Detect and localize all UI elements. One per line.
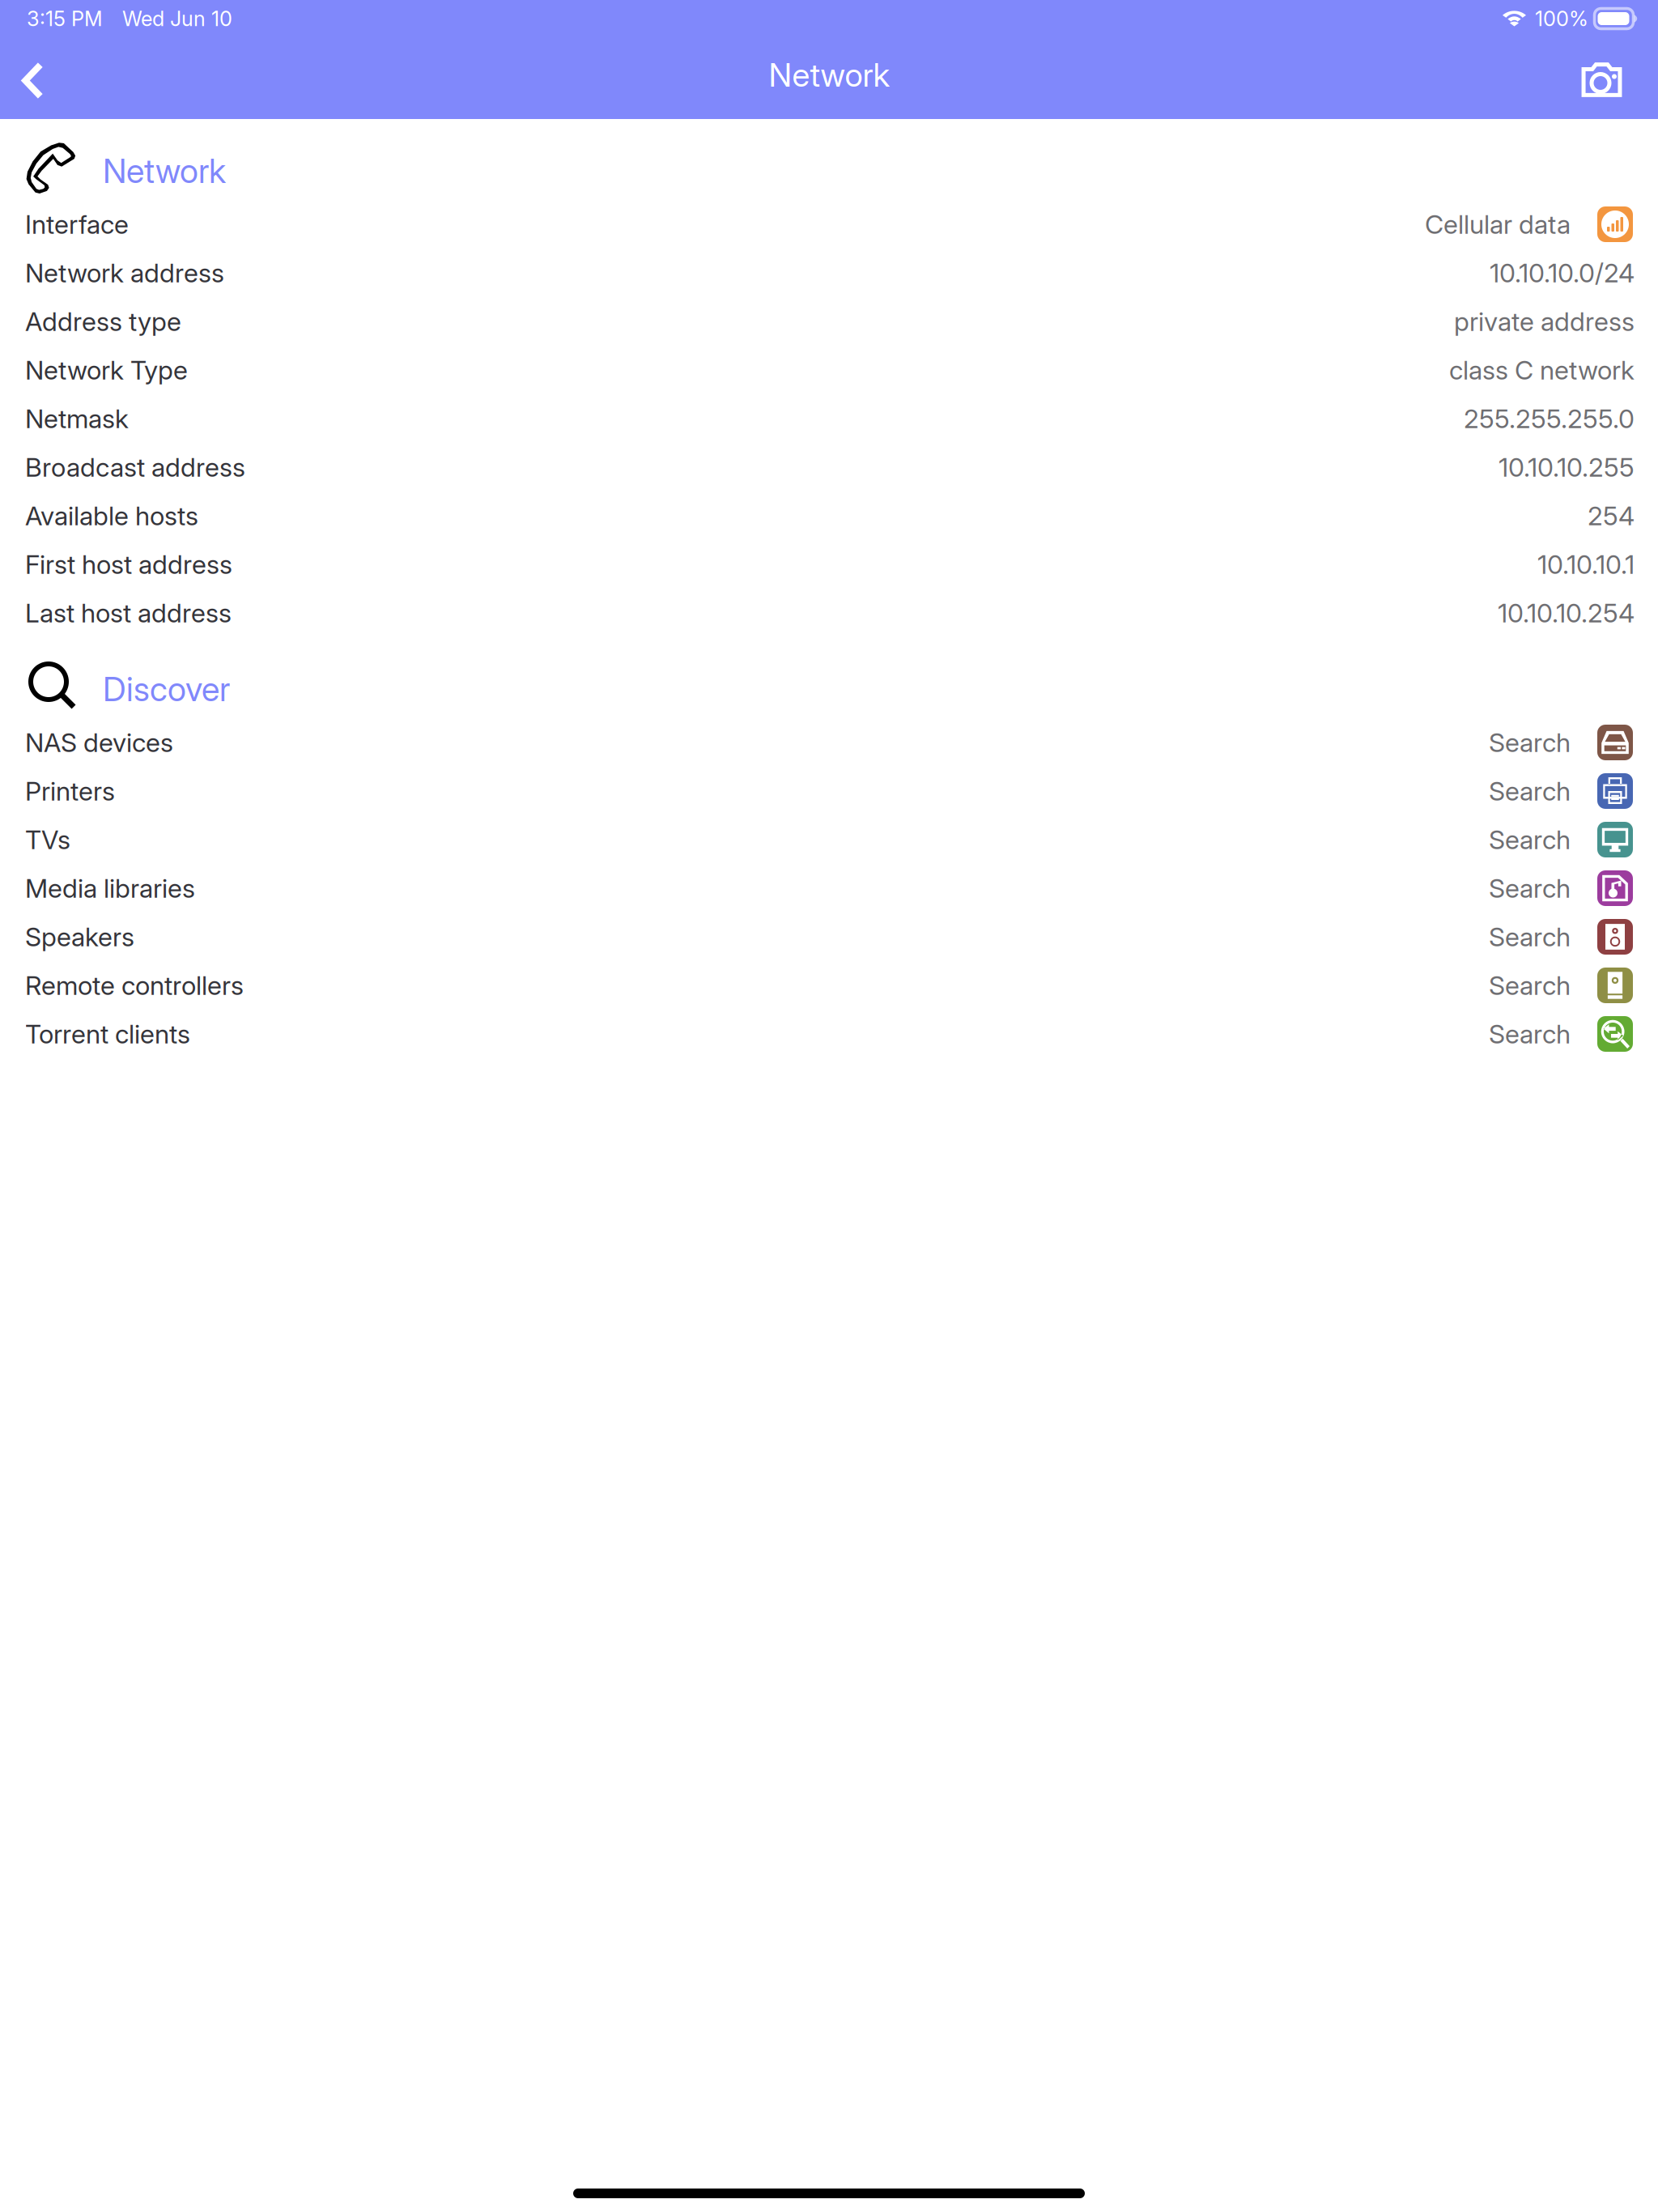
button[interactable]: Remote controllers bbox=[25, 961, 1635, 1010]
staticText: Interface bbox=[25, 209, 129, 240]
staticText: NAS devices bbox=[25, 727, 173, 758]
button[interactable]: Printers bbox=[25, 767, 1635, 815]
staticText: Media libraries bbox=[25, 872, 195, 904]
button[interactable]: Torrent clients bbox=[25, 1010, 1635, 1058]
button[interactable]: Back bbox=[0, 38, 77, 118]
staticText: Search bbox=[1489, 824, 1571, 855]
staticText: 10.10.10.0/24 bbox=[1490, 257, 1635, 288]
staticText: 255.255.255.0 bbox=[1464, 403, 1635, 434]
staticText: Search bbox=[1489, 775, 1571, 807]
button[interactable]: Interface bbox=[25, 200, 1635, 249]
staticText: Network address bbox=[25, 257, 224, 288]
staticText: 10.10.10.1 bbox=[1537, 549, 1635, 580]
staticText: TVs bbox=[25, 824, 70, 855]
staticText: Discover bbox=[103, 669, 230, 709]
staticText: Wed Jun 10 bbox=[122, 6, 232, 31]
staticText: 10.10.10.255 bbox=[1499, 451, 1635, 483]
staticText: 100% bbox=[1535, 6, 1588, 31]
staticText: Printers bbox=[25, 775, 115, 807]
staticText: Netmask bbox=[25, 403, 129, 434]
staticText: class C network bbox=[1449, 354, 1635, 386]
staticText: Speakers bbox=[25, 921, 134, 952]
staticText: Last host address bbox=[25, 597, 232, 629]
staticText: Search bbox=[1489, 727, 1571, 758]
staticText: First host address bbox=[25, 549, 232, 580]
staticText: Address type bbox=[25, 306, 181, 337]
staticText: Search bbox=[1489, 1018, 1571, 1050]
staticText: Network bbox=[769, 55, 889, 94]
staticText: Network bbox=[103, 151, 226, 191]
staticText: 254 bbox=[1588, 500, 1635, 531]
staticText: 3:15 PM bbox=[27, 6, 103, 31]
staticText: Cellular data bbox=[1425, 209, 1571, 240]
staticText: 10.10.10.254 bbox=[1498, 597, 1635, 629]
staticText: Broadcast address bbox=[25, 451, 245, 483]
staticText: Available hosts bbox=[25, 500, 198, 531]
staticText: Network Type bbox=[25, 354, 188, 386]
button[interactable]: Camera bbox=[1545, 38, 1658, 118]
staticText: Search bbox=[1489, 872, 1571, 904]
staticText: Search bbox=[1489, 970, 1571, 1001]
button[interactable]: Speakers bbox=[25, 912, 1635, 961]
button[interactable]: NAS devices bbox=[25, 718, 1635, 767]
staticText: Remote controllers bbox=[25, 970, 244, 1001]
button[interactable]: Media libraries bbox=[25, 864, 1635, 912]
staticText: private address bbox=[1454, 306, 1635, 337]
button[interactable]: TVs bbox=[25, 815, 1635, 864]
staticText: Search bbox=[1489, 921, 1571, 952]
staticText: Torrent clients bbox=[25, 1018, 190, 1050]
